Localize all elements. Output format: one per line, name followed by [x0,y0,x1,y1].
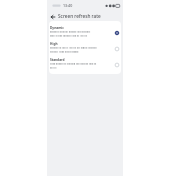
staticText: Standard [50,58,65,62]
staticText: with a max refresh rate of 120 Hz [50,33,88,36]
staticText: Save power by limiting the refresh rate … [50,62,97,65]
button[interactable]: Back [48,12,57,21]
staticText: visuals. Uses more power. [50,49,79,52]
staticText: Screen refresh rate [58,13,101,19]
staticText: Dynamic [50,26,64,30]
button[interactable]: Dynamic [49,23,121,39]
staticText: visuals. Uses more power. [50,50,79,53]
button[interactable]: High [49,39,121,55]
staticText: High [50,42,58,46]
staticText: Refresh at up to 120 Hz for highly smoot… [50,45,97,48]
staticText: 60 Hz. [50,66,57,69]
staticText: Refresh at up to 120 Hz for highly smoot… [50,46,97,49]
staticText: with a max refresh rate of 120 Hz [50,34,88,37]
button[interactable]: Standard [49,55,121,71]
staticText: 60 Hz. [50,65,57,68]
staticText: Balance smooth display and battery [50,30,91,33]
staticText: Save power by limiting the refresh rate … [50,61,97,64]
staticText: 13:40 [63,3,73,8]
staticText: Balance smooth display and battery [50,29,91,32]
